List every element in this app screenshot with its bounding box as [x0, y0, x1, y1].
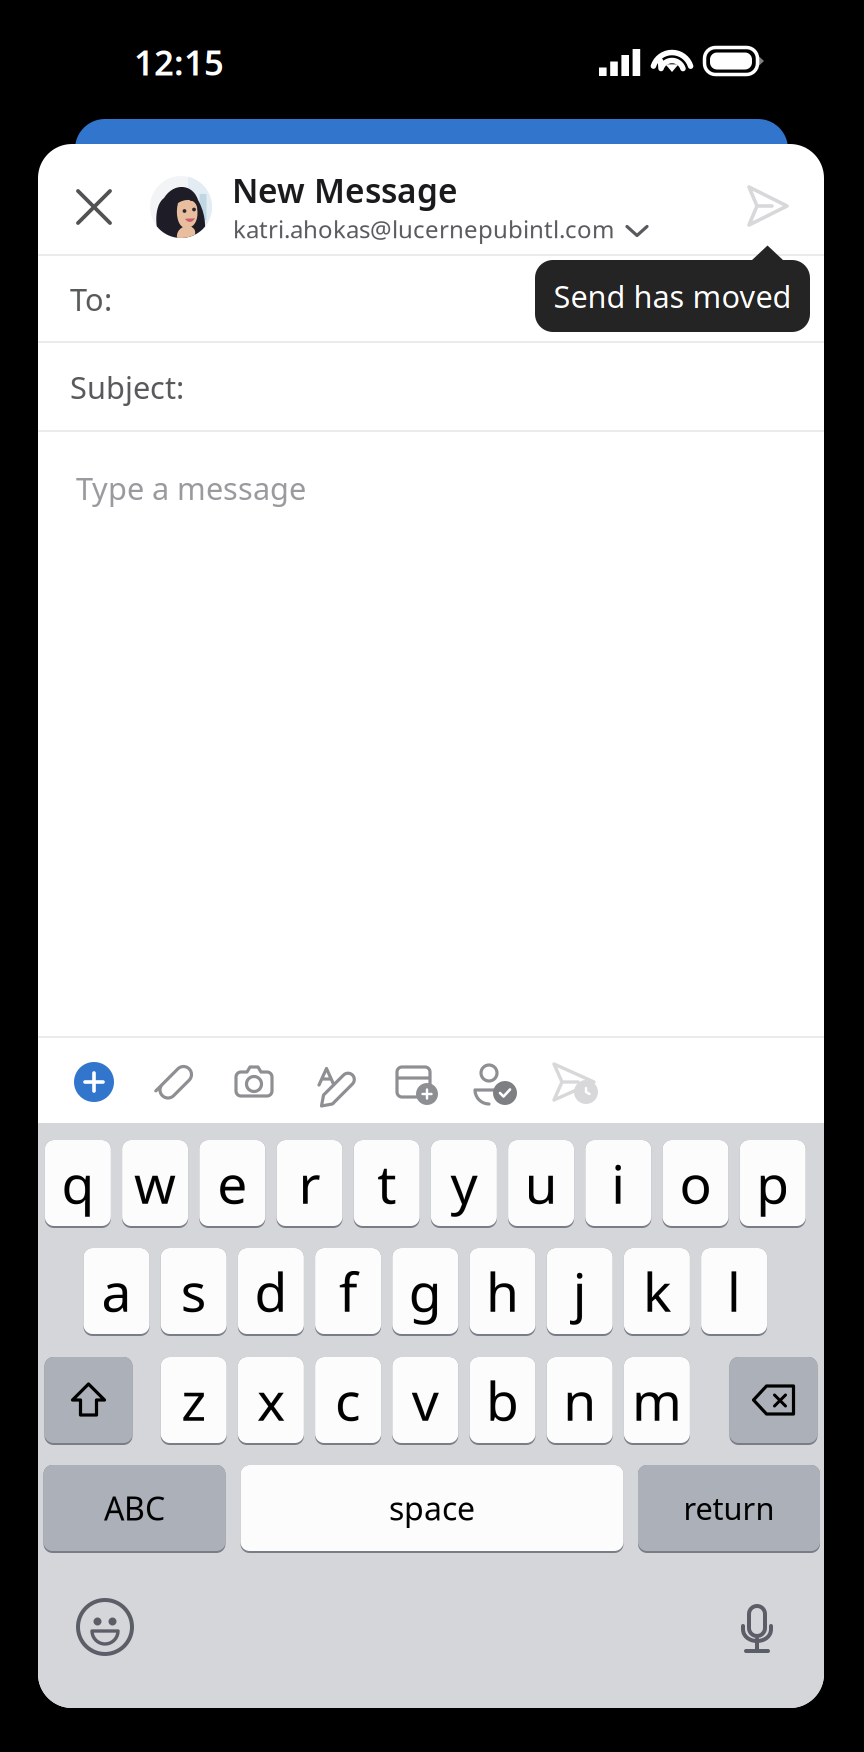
staticText: New Message [232, 168, 458, 212]
button[interactable]: s [161, 1246, 227, 1336]
button[interactable]: g [392, 1246, 458, 1336]
button[interactable]: t [354, 1138, 420, 1228]
staticText: o [679, 1148, 711, 1218]
staticText: Subject: [70, 367, 184, 407]
button[interactable]: n [547, 1355, 613, 1445]
button[interactable]: Add event [388, 1056, 440, 1108]
staticText: g [409, 1256, 442, 1326]
staticText: x [257, 1365, 285, 1435]
button[interactable]: i [585, 1138, 651, 1228]
button[interactable]: Format text [308, 1056, 360, 1108]
button[interactable]: e [199, 1138, 265, 1228]
staticText: c [335, 1365, 361, 1435]
button[interactable]: x [238, 1355, 304, 1445]
staticText: l [727, 1256, 741, 1326]
button[interactable]: l [701, 1246, 767, 1336]
button[interactable]: Send later [548, 1056, 600, 1108]
button[interactable]: Camera [228, 1056, 280, 1108]
button[interactable]: Close [62, 175, 126, 239]
staticText: Type a message [76, 468, 306, 508]
staticText: r [298, 1148, 320, 1218]
staticText: q [61, 1148, 94, 1218]
button[interactable]: u [508, 1138, 574, 1228]
staticText: e [217, 1148, 247, 1218]
button[interactable]: ABC [43, 1463, 225, 1553]
staticText: b [486, 1365, 519, 1435]
staticText: u [525, 1148, 558, 1218]
staticText: f [339, 1256, 357, 1326]
button[interactable]: j [547, 1246, 613, 1336]
staticText: Send has moved [553, 276, 791, 316]
staticText: p [756, 1148, 789, 1218]
button[interactable]: c [315, 1355, 381, 1445]
staticText: y [450, 1148, 477, 1218]
staticText: s [181, 1256, 207, 1326]
staticText: m [632, 1365, 682, 1435]
button[interactable]: k [624, 1246, 690, 1336]
button[interactable]: q [45, 1138, 111, 1228]
button[interactable]: Send [733, 171, 803, 241]
staticText: katri.ahokas@lucernepubintl.com [233, 213, 614, 245]
button[interactable]: w [122, 1138, 188, 1228]
button[interactable]: p [740, 1138, 806, 1228]
staticText: z [181, 1365, 206, 1435]
button[interactable]: Attach file [148, 1056, 200, 1108]
button[interactable]: v [392, 1355, 458, 1445]
button[interactable]: Dictation [735, 1601, 779, 1657]
button[interactable]: Shift [44, 1355, 132, 1445]
staticText: ABC [104, 1487, 165, 1529]
staticText: i [611, 1148, 625, 1218]
staticText: a [101, 1256, 131, 1326]
staticText: n [563, 1365, 596, 1435]
staticText: w [134, 1148, 176, 1218]
button[interactable]: b [469, 1355, 535, 1445]
button[interactable]: h [469, 1246, 535, 1336]
button[interactable]: y [431, 1138, 497, 1228]
button[interactable]: d [238, 1246, 304, 1336]
button[interactable]: Add attachment [68, 1056, 120, 1108]
button[interactable]: return [638, 1463, 820, 1553]
staticText: 12:15 [134, 39, 224, 85]
staticText: space [389, 1487, 475, 1529]
staticText: k [643, 1256, 671, 1326]
button[interactable]: Check availability [468, 1056, 520, 1108]
button[interactable]: Emoji keyboard [78, 1600, 132, 1654]
staticText: t [377, 1148, 396, 1218]
staticText: To: [70, 279, 112, 319]
staticText: v [412, 1365, 439, 1435]
button[interactable]: o [662, 1138, 728, 1228]
staticText: h [486, 1256, 519, 1326]
button[interactable]: space [240, 1463, 623, 1553]
button[interactable]: z [161, 1355, 227, 1445]
button[interactable]: f [315, 1246, 381, 1336]
button[interactable]: Delete [729, 1355, 817, 1445]
staticText: d [254, 1256, 287, 1326]
button[interactable]: m [624, 1355, 690, 1445]
staticText: return [683, 1488, 774, 1528]
button[interactable]: r [276, 1138, 342, 1228]
button[interactable]: a [83, 1246, 149, 1336]
staticText: j [573, 1256, 587, 1326]
